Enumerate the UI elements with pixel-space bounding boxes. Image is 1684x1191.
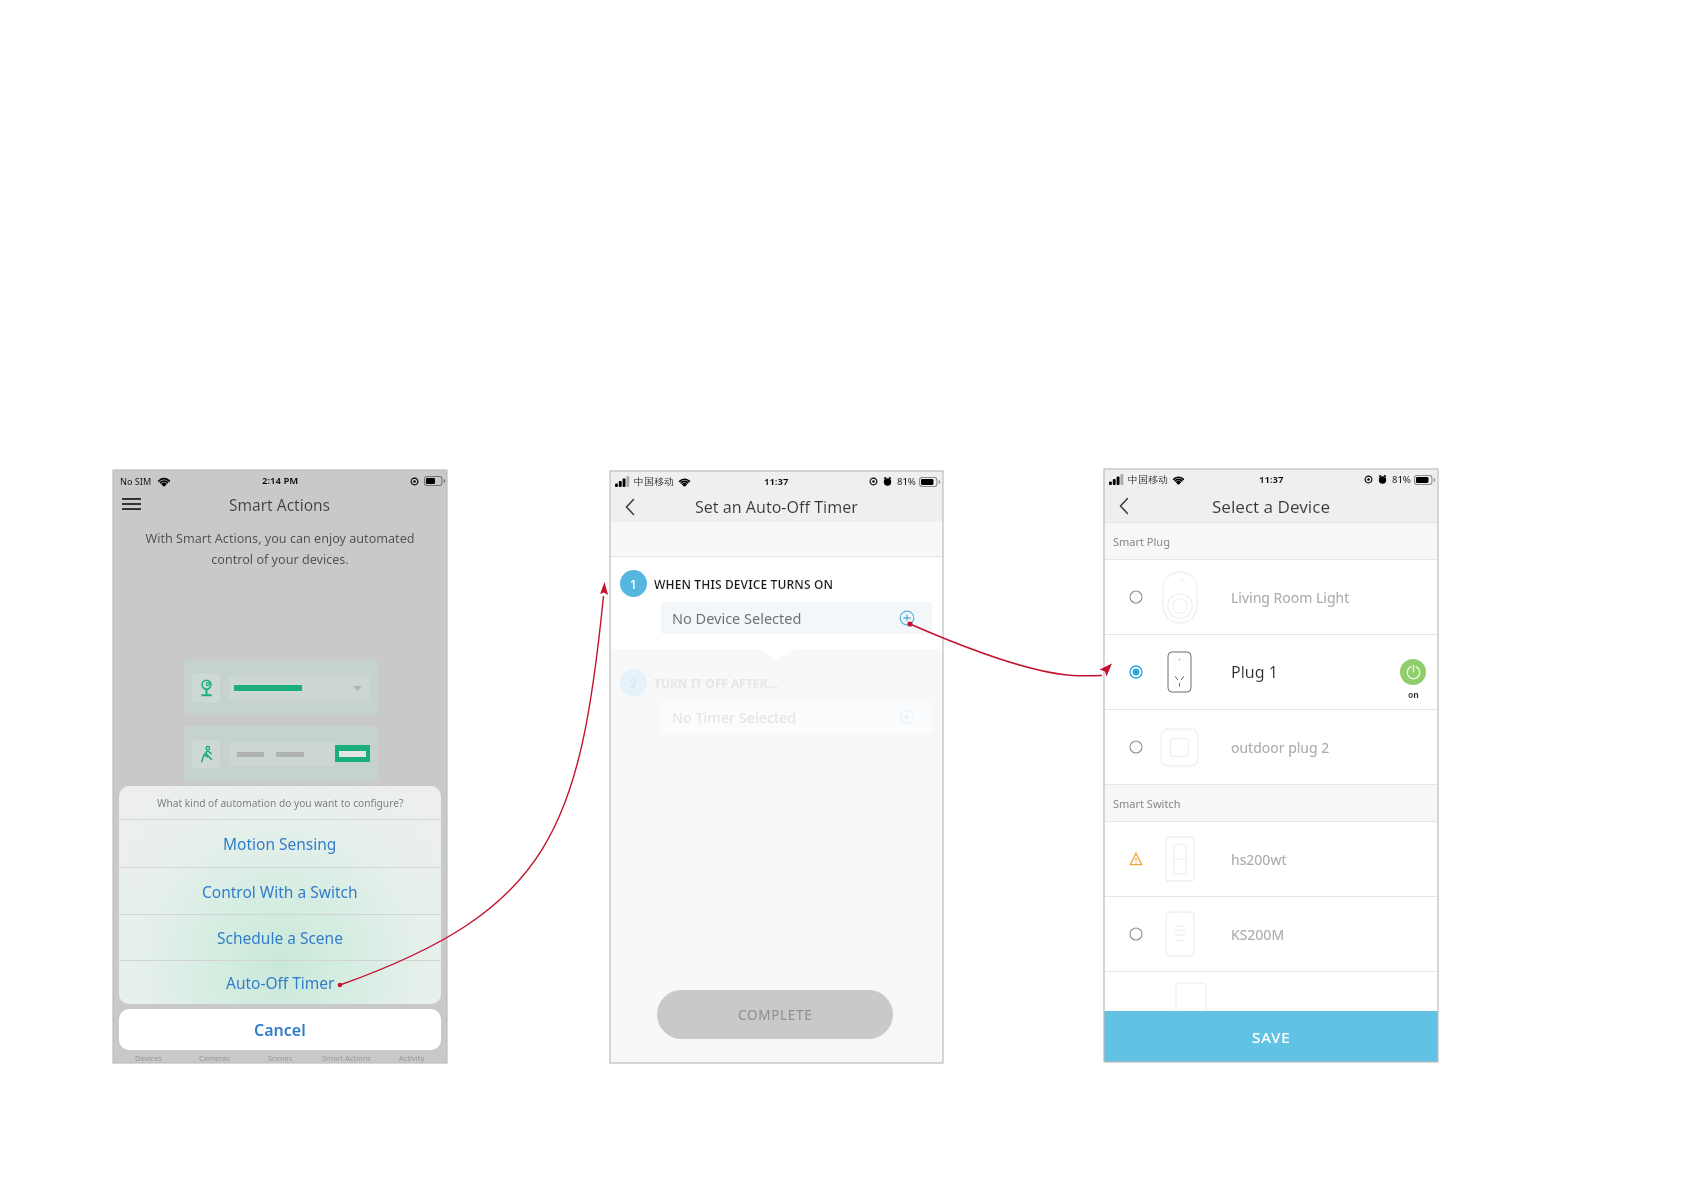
button[interactable]: Back <box>1112 494 1136 518</box>
staticText: COMPLETE <box>738 1006 813 1024</box>
button[interactable]: Plug 1 <box>1104 635 1438 709</box>
button[interactable]: Living Room Light <box>1104 560 1438 634</box>
staticText: 2:14 PM <box>262 474 299 487</box>
staticText: No SIM <box>120 475 152 487</box>
staticText: What kind of automation do you want to c… <box>157 796 404 810</box>
staticText: 中国移动 <box>1128 473 1168 486</box>
staticText: Cameras <box>199 1053 230 1063</box>
staticText: No Timer Selected <box>672 707 797 727</box>
staticText: Devices <box>135 1053 162 1063</box>
button[interactable]: outdoor plug 2 <box>1104 710 1438 784</box>
staticText: Plug 1 <box>1231 661 1278 683</box>
staticText: Control With a Switch <box>202 881 358 902</box>
staticText: Scenes <box>268 1053 293 1063</box>
staticText: Smart Plug <box>1113 534 1170 549</box>
staticText: Living Room Light <box>1231 588 1350 607</box>
staticText: 11:37 <box>1259 473 1284 486</box>
button[interactable]: Menu <box>118 491 144 517</box>
staticText: hs200wt <box>1231 850 1287 869</box>
button[interactable]: No Timer Selected <box>661 701 932 733</box>
staticText: No Device Selected <box>672 608 802 628</box>
staticText: Cancel <box>254 1019 306 1041</box>
button[interactable]: COMPLETE <box>657 990 893 1039</box>
staticText: Smart Actions <box>229 494 331 515</box>
staticText: Select a Device <box>1212 495 1330 518</box>
staticText: TURN IT OFF AFTER... <box>654 675 778 691</box>
staticText: 81% <box>897 475 916 488</box>
button[interactable]: Motion Sensing <box>119 820 441 867</box>
button[interactable]: No Device Selected <box>661 602 932 634</box>
staticText: 11:37 <box>764 475 789 488</box>
staticText: Schedule a Scene <box>217 927 343 948</box>
staticText: 81% <box>1392 473 1411 486</box>
button[interactable]: Power toggle, on <box>1400 659 1426 685</box>
staticText: 1 <box>630 576 637 592</box>
button[interactable]: KS200M <box>1104 897 1438 971</box>
button[interactable]: hs200wt <box>1104 822 1438 896</box>
staticText: Auto-Off Timer <box>226 972 335 993</box>
staticText: Motion Sensing <box>223 833 337 854</box>
staticText: WHEN THIS DEVICE TURNS ON <box>654 576 834 592</box>
staticText: Activity <box>399 1053 425 1063</box>
staticText: With Smart Actions, you can enjoy automa… <box>121 530 439 568</box>
staticText: SAVE <box>1252 1027 1291 1047</box>
button[interactable]: Camera automation card <box>184 660 378 715</box>
staticText: Smart Switch <box>1113 796 1181 811</box>
staticText: Set an Auto-Off Timer <box>695 496 858 518</box>
button[interactable]: SAVE <box>1104 1011 1438 1062</box>
button[interactable]: Auto-Off Timer <box>119 961 441 1004</box>
button[interactable]: Motion automation card <box>184 726 378 781</box>
staticText: on <box>1408 689 1419 701</box>
staticText: outdoor plug 2 <box>1231 738 1330 757</box>
button[interactable]: Control With a Switch <box>119 868 441 914</box>
staticText: KS200M <box>1231 925 1285 944</box>
staticText: 2 <box>630 675 637 691</box>
button[interactable]: Schedule a Scene <box>119 915 441 960</box>
staticText: Smart Actions <box>322 1053 371 1063</box>
button[interactable]: Back <box>618 495 642 519</box>
button[interactable]: Cancel <box>119 1009 441 1050</box>
staticText: 中国移动 <box>634 475 674 488</box>
